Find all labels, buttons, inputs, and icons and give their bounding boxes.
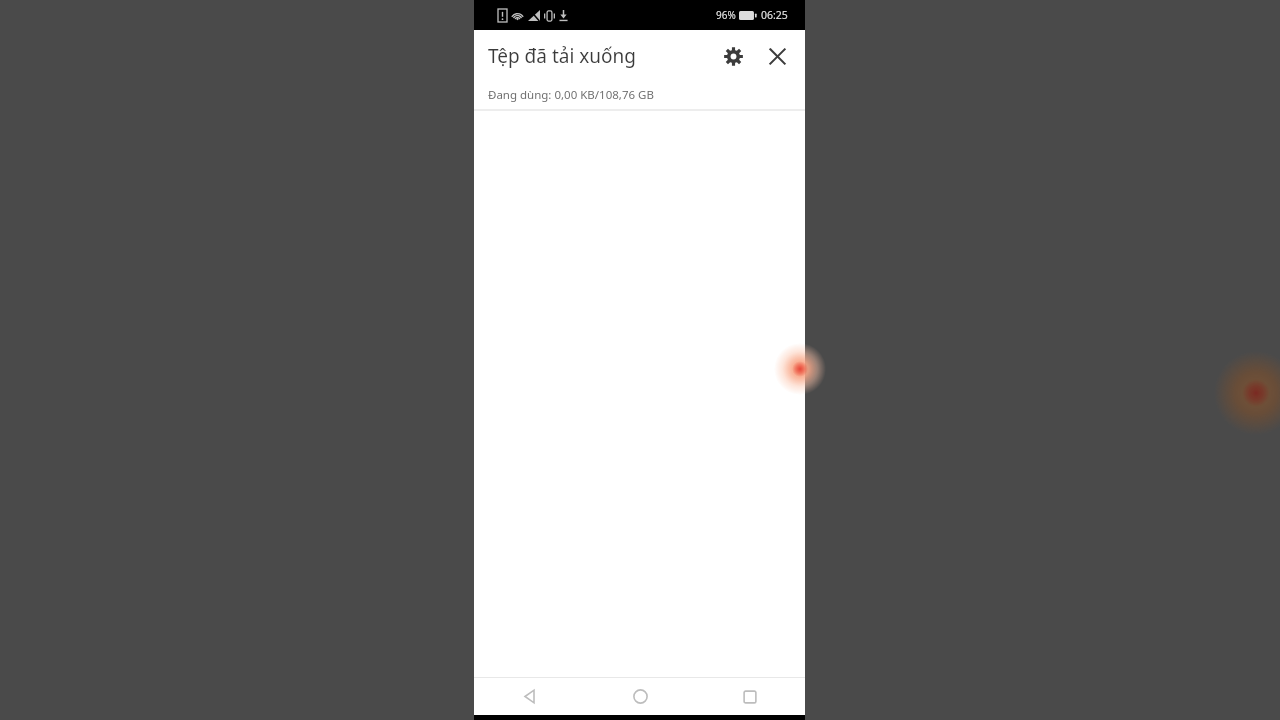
staticText: 06:25 — [761, 8, 788, 22]
staticText: Tệp đã tải xuống — [488, 43, 636, 69]
button[interactable]: Recents — [695, 678, 805, 715]
staticText: 96% — [716, 8, 736, 22]
staticText: Đang dùng: 0,00 KB/108,76 GB — [488, 87, 654, 103]
button[interactable]: Close — [757, 36, 797, 76]
button[interactable]: Home — [585, 678, 695, 715]
button[interactable]: Back — [474, 678, 585, 715]
button[interactable]: Settings — [713, 36, 753, 76]
